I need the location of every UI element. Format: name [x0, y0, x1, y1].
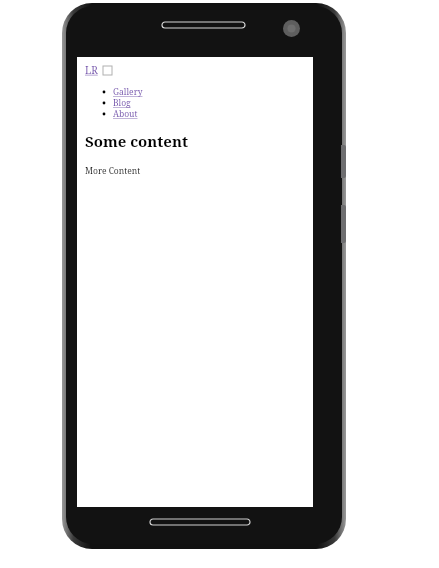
button[interactable]: Blog — [101, 97, 131, 108]
button[interactable]: Power button — [341, 145, 346, 178]
staticText: Some content — [85, 131, 189, 151]
staticText: About — [113, 108, 138, 119]
staticText: Blog — [113, 97, 131, 108]
button[interactable]: Menu toggle — [103, 66, 112, 75]
button[interactable]: About — [101, 108, 138, 119]
staticText: LR — [85, 63, 98, 77]
staticText: Gallery — [113, 86, 143, 97]
button[interactable]: Gallery — [101, 86, 143, 97]
staticText: More Content — [85, 165, 141, 177]
button[interactable]: LR — [85, 63, 98, 77]
